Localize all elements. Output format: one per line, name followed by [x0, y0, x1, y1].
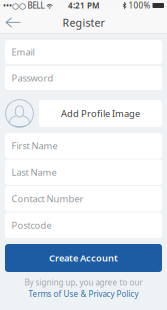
staticText: 4:21 PM [68, 0, 99, 11]
button[interactable]: Back [0, 11, 36, 34]
staticText: BELL [27, 0, 44, 11]
staticText: •••○○ [3, 0, 26, 11]
button[interactable]: Contact Number [5, 186, 162, 211]
staticText: 100% [128, 0, 150, 11]
button[interactable]: Password [5, 66, 162, 90]
button[interactable]: Postcode [5, 212, 162, 238]
staticText: Create Account [49, 252, 118, 264]
staticText: Password [11, 72, 53, 84]
staticText: Last Name [11, 166, 56, 178]
staticText: Terms of Use & Privacy Policy [28, 289, 138, 299]
staticText: First Name [11, 140, 57, 152]
button[interactable]: Terms of Use & Privacy Policy [28, 289, 138, 299]
staticText: Email [11, 46, 34, 58]
button[interactable]: Create Account [5, 244, 162, 272]
staticText: By signing up, you agree to our [24, 277, 142, 288]
staticText: Register [62, 15, 104, 30]
staticText: Postcode [11, 219, 51, 231]
staticText: Add Profile Image [61, 107, 140, 120]
button[interactable]: Email [5, 40, 162, 64]
button[interactable]: Add Profile Image [39, 100, 162, 127]
staticText: Contact Number [11, 193, 83, 205]
button[interactable]: First Name [5, 133, 162, 158]
button[interactable]: Last Name [5, 159, 162, 185]
